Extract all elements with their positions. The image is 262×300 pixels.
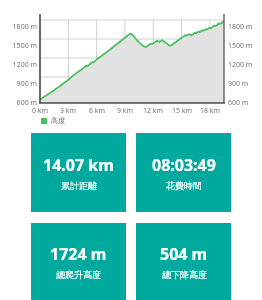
staticText: 08:03:49 xyxy=(152,154,216,176)
staticText: 504 m xyxy=(160,243,208,265)
staticText: 12 km xyxy=(139,106,167,116)
staticText: 總下降高度 xyxy=(162,269,207,280)
staticText: 6 km xyxy=(83,106,111,116)
staticText: 1800 m xyxy=(228,22,262,32)
button[interactable]: 花費時間 08:03:49 xyxy=(136,133,231,212)
staticText: 900 m xyxy=(0,79,37,89)
staticText: 14.07 km xyxy=(43,154,114,176)
staticText: 15 km xyxy=(168,106,196,116)
button[interactable]: 累計距離 14.07 km xyxy=(31,133,126,212)
staticText: 0 km xyxy=(26,106,54,116)
staticText: 1200 m xyxy=(0,60,37,70)
staticText: 600 m xyxy=(0,98,37,108)
staticText: 9 km xyxy=(111,106,139,116)
staticText: 900 m xyxy=(228,79,262,89)
staticText: 花費時間 xyxy=(166,180,202,191)
staticText: 1500 m xyxy=(228,41,262,51)
staticText: 600 m xyxy=(228,98,262,108)
button[interactable]: 總下降高度 504 m xyxy=(136,223,231,300)
button[interactable]: 總爬升高度 1724 m xyxy=(31,223,126,300)
staticText: 1200 m xyxy=(228,60,262,70)
staticText: 18 km xyxy=(196,106,224,116)
staticText: 1500 m xyxy=(0,41,37,51)
staticText: 1724 m xyxy=(50,243,107,265)
staticText: 累計距離 xyxy=(61,180,97,191)
staticText: 1800 m xyxy=(0,22,37,32)
staticText: 高度 xyxy=(51,116,65,125)
staticText: 總爬升高度 xyxy=(56,269,101,280)
staticText: 3 km xyxy=(54,106,82,116)
